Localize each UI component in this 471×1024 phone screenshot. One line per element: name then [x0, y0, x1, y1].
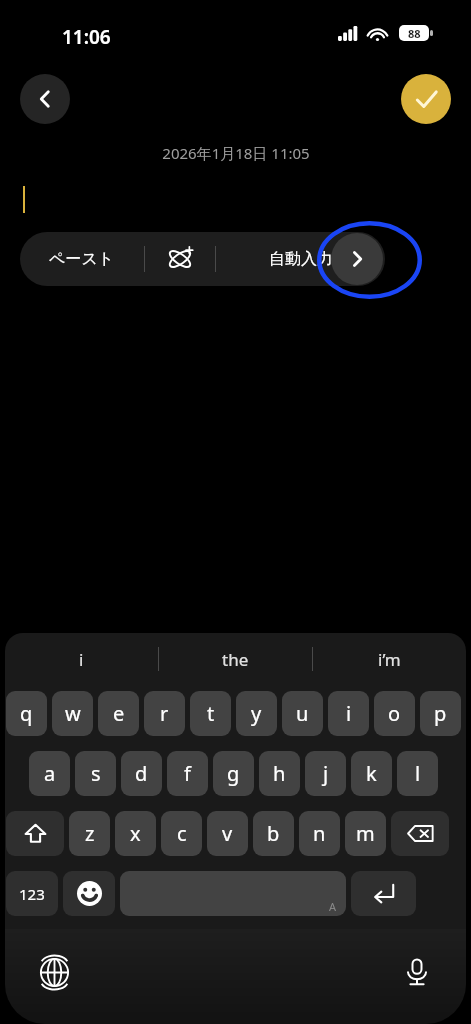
staticText: r — [160, 700, 169, 727]
staticText: d — [135, 760, 148, 787]
button[interactable]: t — [190, 691, 231, 736]
staticText: k — [366, 760, 377, 787]
staticText: i’m — [378, 648, 401, 671]
button[interactable]: g — [213, 751, 254, 796]
button[interactable]: x — [115, 811, 156, 856]
button[interactable]: Space — [120, 871, 346, 916]
button[interactable]: y — [236, 691, 277, 736]
staticText: a — [44, 760, 56, 787]
button[interactable]: f — [167, 751, 208, 796]
staticText: z — [85, 820, 95, 847]
button[interactable]: a — [29, 751, 70, 796]
staticText: t — [207, 700, 215, 727]
button[interactable]: Back — [20, 74, 70, 124]
staticText: 88 — [408, 26, 421, 41]
staticText: m — [356, 820, 375, 847]
button[interactable]: Emoji — [63, 871, 115, 916]
staticText: 自動入力 — [269, 249, 333, 269]
staticText: p — [434, 700, 447, 727]
button[interactable]: u — [282, 691, 323, 736]
staticText: h — [273, 760, 286, 787]
button[interactable]: ペースト — [20, 232, 144, 286]
staticText: y — [251, 700, 262, 727]
button[interactable]: i — [5, 633, 158, 685]
staticText: q — [20, 700, 33, 727]
button[interactable]: p — [420, 691, 461, 736]
button[interactable]: i — [328, 691, 369, 736]
button[interactable]: e — [98, 691, 139, 736]
button[interactable]: b — [253, 811, 294, 856]
button[interactable]: 自動入力 — [216, 232, 385, 286]
staticText: u — [296, 700, 309, 727]
staticText: s — [91, 760, 101, 787]
button[interactable]: o — [374, 691, 415, 736]
button[interactable]: Shift — [6, 811, 64, 856]
staticText: 11:06 — [62, 24, 111, 50]
button[interactable]: Backspace — [391, 811, 449, 856]
button[interactable]: Enter — [351, 871, 416, 916]
staticText: A — [329, 899, 337, 914]
staticText: 2026年1月18日 11:05 — [162, 143, 310, 163]
staticText: e — [113, 700, 125, 727]
staticText: f — [184, 760, 191, 787]
button[interactable]: n — [299, 811, 340, 856]
staticText: 123 — [19, 884, 45, 904]
button[interactable]: Voice input — [390, 945, 444, 999]
button[interactable]: d — [121, 751, 162, 796]
button[interactable]: the — [159, 633, 312, 685]
button[interactable]: z — [69, 811, 110, 856]
staticText: w — [65, 700, 81, 727]
button[interactable]: w — [52, 691, 93, 736]
staticText: c — [177, 820, 187, 847]
button[interactable]: i’m — [313, 633, 466, 685]
button[interactable]: Done — [401, 74, 451, 124]
staticText: x — [130, 820, 141, 847]
button[interactable]: j — [305, 751, 346, 796]
staticText: i — [79, 648, 84, 671]
staticText: j — [323, 760, 329, 787]
button[interactable]: l — [397, 751, 438, 796]
button[interactable]: v — [207, 811, 248, 856]
button[interactable]: h — [259, 751, 300, 796]
button[interactable]: Next suggestions — [331, 233, 383, 285]
staticText: ペースト — [49, 249, 115, 269]
button[interactable]: Change language — [27, 945, 81, 999]
button[interactable]: 123 — [6, 871, 58, 916]
staticText: v — [222, 820, 233, 847]
staticText: l — [415, 760, 421, 787]
button[interactable]: AI assist — [145, 232, 215, 286]
button[interactable]: c — [161, 811, 202, 856]
button[interactable]: q — [6, 691, 47, 736]
staticText: b — [267, 820, 280, 847]
button[interactable]: k — [351, 751, 392, 796]
button[interactable]: s — [75, 751, 116, 796]
staticText: the — [222, 648, 249, 671]
staticText: g — [227, 760, 240, 787]
staticText: i — [346, 700, 352, 727]
button[interactable]: m — [345, 811, 386, 856]
button[interactable]: r — [144, 691, 185, 736]
staticText: n — [313, 820, 326, 847]
staticText: o — [388, 700, 401, 727]
